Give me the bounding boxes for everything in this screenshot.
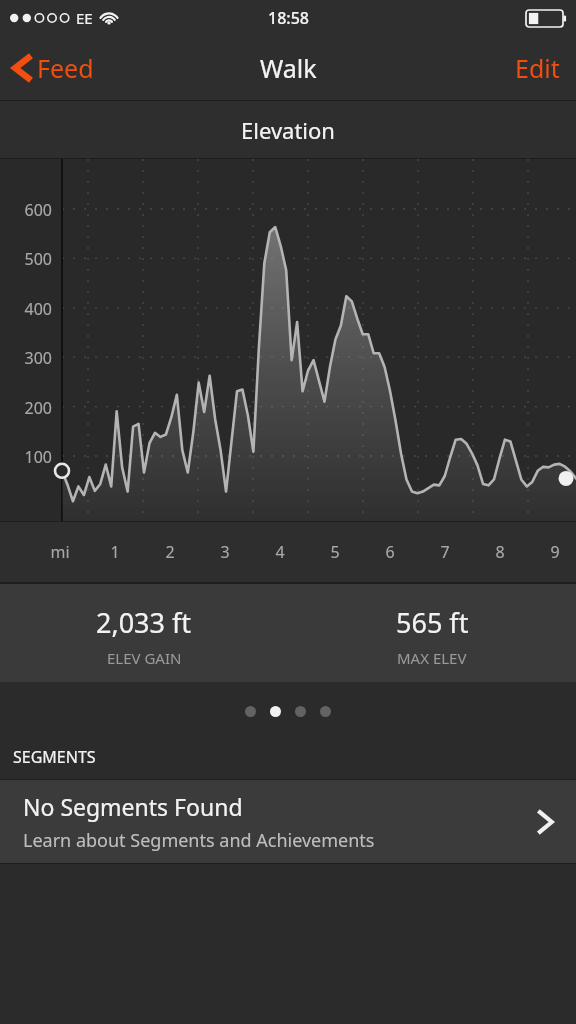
staticText: 2 <box>150 541 190 563</box>
staticText: 8 <box>480 541 520 563</box>
staticText: 7 <box>425 541 465 563</box>
staticText: 6 <box>370 541 410 563</box>
button[interactable]: 565 ft <box>288 584 576 668</box>
button[interactable]: Page 1 <box>238 704 263 718</box>
staticText: No Segments Found <box>23 791 243 822</box>
staticText: mi <box>40 541 80 563</box>
button[interactable]: 2,033 ft <box>0 584 288 668</box>
staticText: Learn about Segments and Achievements <box>23 828 375 853</box>
staticText: 500 <box>0 248 52 270</box>
button[interactable]: Page 3 <box>288 704 313 718</box>
staticText: Walk <box>260 51 317 85</box>
staticText: MAX ELEV <box>397 648 467 668</box>
staticText: Edit <box>515 51 560 85</box>
button[interactable]: Page 4 <box>313 704 338 718</box>
staticText: 200 <box>0 397 52 419</box>
staticText: 2,033 ft <box>96 604 192 641</box>
staticText: SEGMENTS <box>13 746 96 768</box>
staticText: 3 <box>205 541 245 563</box>
staticText: 565 ft <box>396 604 469 641</box>
staticText: 100 <box>0 446 52 468</box>
staticText: ELEV GAIN <box>107 648 182 668</box>
staticText: Elevation <box>241 115 335 145</box>
button[interactable]: Page 2 <box>263 704 288 718</box>
staticText: 1 <box>95 541 135 563</box>
staticText: 600 <box>0 199 52 221</box>
staticText: 5 <box>315 541 355 563</box>
staticText: 9 <box>535 541 575 563</box>
staticText: 400 <box>0 298 52 320</box>
button[interactable]: No Segments Found <box>0 780 576 863</box>
staticText: 18:58 <box>268 7 309 29</box>
staticText: 300 <box>0 347 52 369</box>
staticText: EE <box>76 8 93 28</box>
staticText: Feed <box>37 51 94 85</box>
button[interactable]: Feed <box>0 43 106 93</box>
button[interactable]: Edit <box>499 41 576 95</box>
staticText: 4 <box>260 541 300 563</box>
